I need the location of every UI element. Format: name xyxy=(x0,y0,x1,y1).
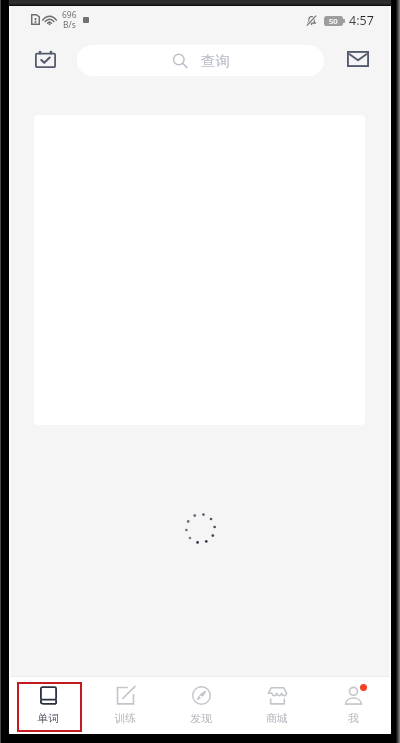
button[interactable]: 发现 xyxy=(163,677,239,734)
button[interactable]: 查询 xyxy=(77,45,324,76)
staticText: 查询 xyxy=(201,52,230,70)
staticText: 50 xyxy=(329,16,338,26)
button[interactable]: Calendar xyxy=(25,39,65,79)
staticText: 单词 xyxy=(37,712,59,726)
staticText: 696 xyxy=(62,9,77,21)
staticText: 发现 xyxy=(190,712,212,726)
staticText: 我 xyxy=(348,712,359,726)
button[interactable]: 商城 xyxy=(239,677,315,734)
staticText: 4:57 xyxy=(349,12,374,29)
button[interactable]: 训练 xyxy=(86,677,163,734)
button[interactable]: Messages xyxy=(338,39,378,79)
staticText: 训练 xyxy=(114,712,136,726)
button[interactable]: 单词 xyxy=(9,677,86,734)
staticText: B/s xyxy=(63,19,76,31)
button[interactable]: 我 xyxy=(315,677,391,734)
staticText: 商城 xyxy=(266,712,288,726)
